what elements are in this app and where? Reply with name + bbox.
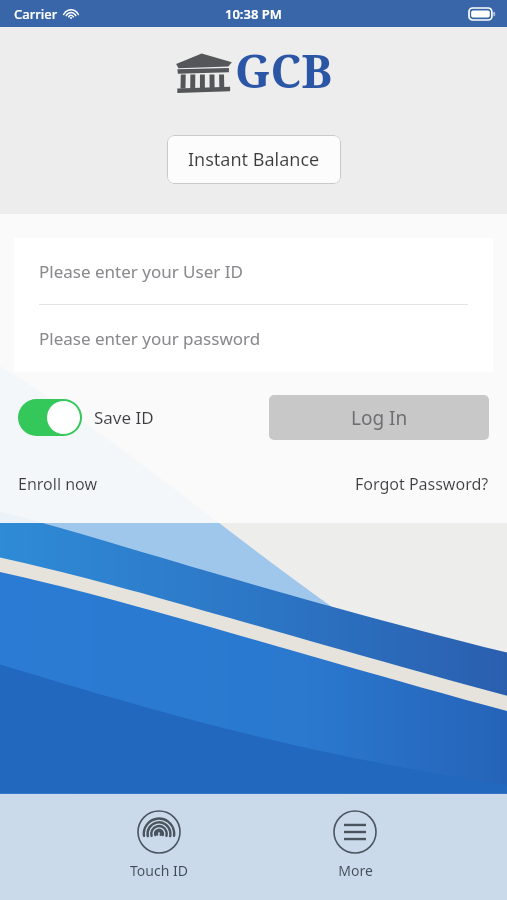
button[interactable]: Instant Balance — [167, 135, 341, 184]
button[interactable]: Please enter your password — [14, 305, 493, 372]
staticText: Touch ID — [130, 861, 188, 880]
staticText: Forgot Password? — [355, 473, 489, 495]
button[interactable]: Forgot Password? — [355, 473, 489, 495]
staticText: Carrier — [14, 5, 58, 23]
staticText: Enroll now — [18, 473, 97, 495]
staticText: Please enter your password — [39, 327, 261, 350]
button[interactable]: Touch ID — [116, 808, 202, 882]
button[interactable]: Log In — [269, 395, 489, 440]
button[interactable]: Please enter your User ID — [14, 238, 493, 304]
staticText: Instant Balance — [188, 147, 320, 172]
staticText: Please enter your User ID — [39, 260, 243, 283]
staticText: Save ID — [94, 406, 154, 429]
staticText: Log In — [351, 405, 408, 431]
staticText: GCB — [235, 39, 333, 102]
button[interactable]: More — [319, 808, 391, 882]
button[interactable]: Save ID — [18, 399, 154, 436]
button[interactable]: Enroll now — [18, 473, 97, 495]
staticText: More — [338, 861, 373, 880]
staticText: 10:38 PM — [225, 5, 282, 23]
